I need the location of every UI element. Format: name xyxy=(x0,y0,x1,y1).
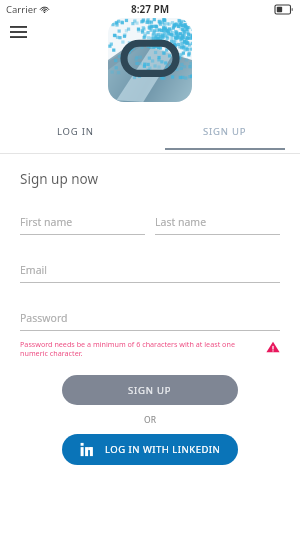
staticText: LOG IN WITH LINKEDIN xyxy=(105,443,221,456)
staticText: OR xyxy=(144,414,156,426)
staticText: 8:27 PM xyxy=(131,2,170,16)
button[interactable]: LOG IN xyxy=(0,110,150,153)
button[interactable]: SIGN UP xyxy=(62,375,238,405)
staticText: Last name xyxy=(155,215,207,229)
staticText: LOG IN xyxy=(57,125,94,138)
staticText: Email xyxy=(20,263,47,277)
button[interactable]: LOG IN WITH LINKEDIN xyxy=(62,434,238,465)
button[interactable]: First name xyxy=(20,215,145,235)
staticText: Password xyxy=(20,311,68,325)
button[interactable]: SIGN UP xyxy=(150,110,300,153)
staticText: Sign up now xyxy=(20,170,99,188)
staticText: Password needs be a minimum of 6 charact… xyxy=(20,339,260,359)
staticText: Carrier xyxy=(6,3,37,16)
button[interactable]: Last name xyxy=(155,215,280,235)
staticText: SIGN UP xyxy=(203,125,247,138)
button[interactable]: Menu xyxy=(4,18,32,46)
staticText: First name xyxy=(20,215,73,229)
other: Error xyxy=(266,340,280,354)
button[interactable]: Email xyxy=(20,263,280,283)
staticText: SIGN UP xyxy=(128,384,172,397)
button[interactable]: Password xyxy=(20,311,280,331)
